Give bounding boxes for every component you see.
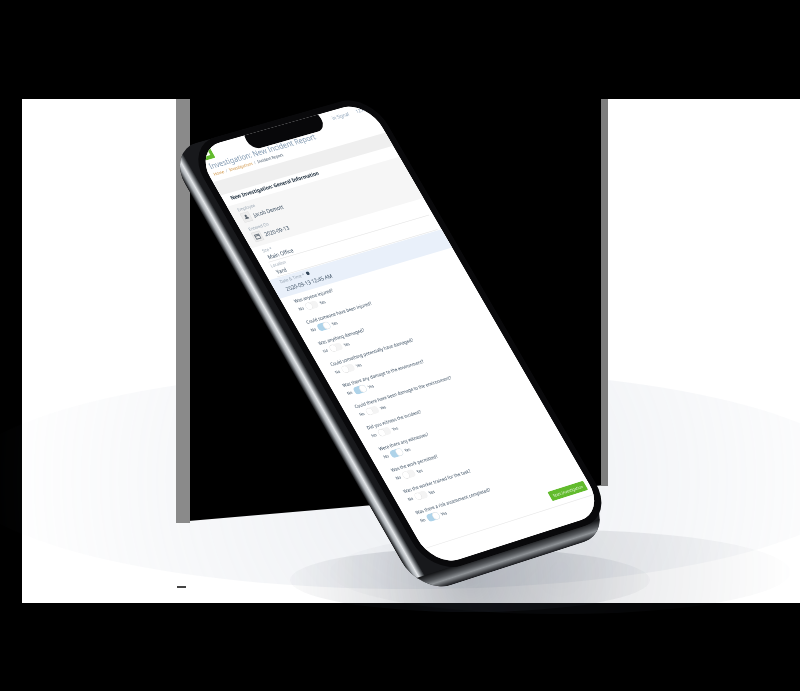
staticText: Yes (391, 425, 399, 432)
staticText: Yes (427, 489, 436, 495)
staticText: Employee (236, 202, 256, 213)
staticText: Yes (330, 320, 339, 326)
staticText: Incident Report (256, 152, 284, 164)
staticText: Investigation: New Incident Report (206, 131, 318, 171)
staticText: No (358, 410, 366, 417)
staticText: / (222, 167, 230, 174)
staticText: Start Investigation (552, 484, 584, 498)
button[interactable]: Was there a risk assessment completed? (425, 511, 441, 522)
staticText: Entered On (247, 221, 270, 232)
staticText: No (370, 432, 378, 438)
staticText: 2020-09-13 (262, 224, 291, 238)
button[interactable]: Start Investigation (547, 481, 588, 501)
staticText: Could someone have been injured? (305, 300, 373, 326)
staticText: Yes (367, 383, 375, 390)
staticText: Jacob Demott (251, 203, 285, 218)
staticText: Yes (342, 341, 351, 347)
staticText: No (382, 453, 390, 460)
staticText: Yard (274, 266, 288, 276)
staticText: Date & Time * (278, 271, 306, 284)
staticText: No (321, 347, 330, 354)
staticText: No (297, 305, 305, 312)
staticText: / (251, 159, 259, 166)
button[interactable]: Was the work permitted? (401, 469, 417, 480)
staticText: No (309, 326, 317, 333)
button[interactable]: Did you witness the incident? (376, 426, 393, 437)
staticText: Was there a risk assessment completed? (414, 486, 492, 516)
staticText: No (334, 368, 342, 375)
staticText: Was anyone injured? (293, 287, 335, 305)
button[interactable]: Were there any witnesses? (388, 447, 405, 458)
staticText: Location (269, 258, 288, 268)
button[interactable]: Could someone have been injured? (316, 321, 332, 332)
button[interactable]: Could there have been damage to the envi… (364, 405, 380, 416)
staticText: Yes (440, 510, 448, 517)
staticText: No (419, 517, 427, 523)
staticText: No (346, 389, 354, 396)
staticText: 2020-09-13 12:45 AM (284, 272, 334, 293)
button[interactable]: Could something potentially have damaged… (340, 363, 356, 374)
button[interactable]: Was anything damaged? (328, 342, 344, 353)
staticText: No (394, 474, 402, 481)
staticText: New Investigation: General Information (229, 169, 321, 201)
staticText: Was the worker trained for the task? (402, 468, 472, 495)
staticText: 12:45 (354, 105, 368, 114)
staticText: Yes (379, 404, 387, 411)
staticText: Main Office (266, 246, 295, 261)
staticText: Yes (403, 446, 411, 453)
staticText: Site * (260, 245, 273, 254)
staticText: Did you witness the incident? (365, 408, 423, 431)
staticText: Was there any damage to the environment? (341, 358, 425, 389)
staticText: Was the work permitted? (390, 453, 439, 474)
staticText: Yes (415, 467, 424, 474)
button[interactable]: Was anyone injured? (304, 300, 320, 311)
staticText: Could something potentially have damaged… (329, 336, 415, 368)
staticText: in Signal (330, 110, 350, 121)
staticText: Yes (318, 299, 327, 305)
button[interactable]: Was the worker trained for the task? (413, 490, 429, 501)
staticText: No (406, 495, 415, 502)
staticText: Home (212, 169, 225, 177)
staticText: Was anything damaged? (317, 327, 366, 347)
staticText: Could there have been damage to the envi… (353, 374, 453, 410)
staticText: Yes (354, 362, 363, 369)
button[interactable]: Was there any damage to the environment? (352, 384, 368, 395)
staticText: Were there any witnesses? (377, 431, 430, 452)
staticText: Investigations (228, 161, 254, 172)
